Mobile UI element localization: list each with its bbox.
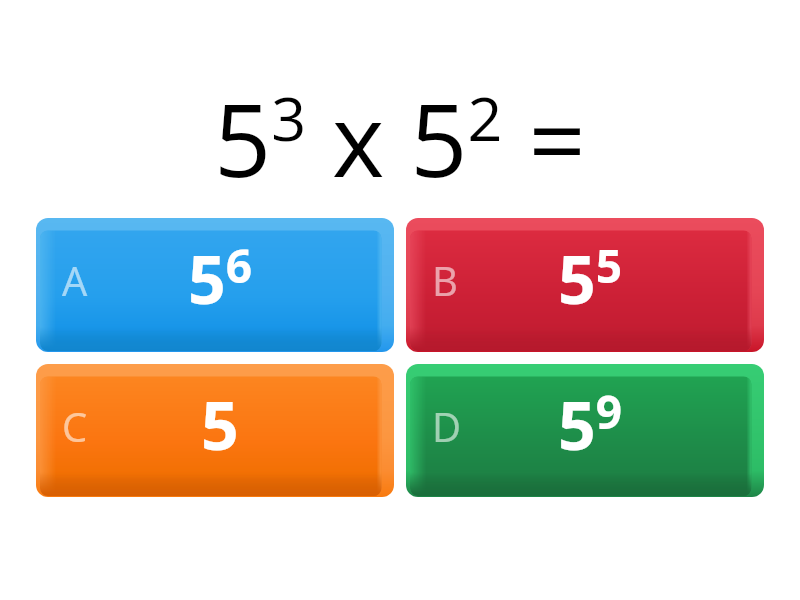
staticText: 56 [188, 233, 253, 323]
button[interactable]: B [406, 218, 764, 352]
button[interactable]: D [406, 364, 764, 497]
staticText: 55 [558, 233, 623, 323]
button[interactable]: C [36, 364, 394, 497]
staticText: 59 [558, 379, 623, 469]
staticText: B [432, 253, 458, 307]
button[interactable]: A [36, 218, 394, 352]
staticText: D [432, 399, 462, 453]
staticText: A [62, 253, 88, 307]
staticText: 5 [201, 379, 239, 469]
staticText: 53 x 52 = [214, 70, 586, 190]
staticText: C [62, 399, 88, 453]
